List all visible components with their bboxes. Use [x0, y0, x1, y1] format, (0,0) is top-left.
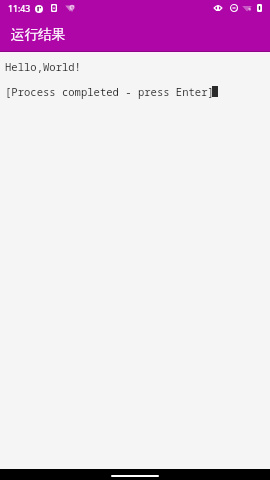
staticText: 运行结果 [11, 26, 66, 43]
button[interactable]: Console output, tap to press Enter [0, 52, 270, 469]
other: Notification [35, 5, 43, 13]
other: Battery [257, 4, 262, 12]
other: Data saver [214, 4, 222, 12]
other: Do not disturb [230, 4, 238, 12]
staticText: 11:43 [8, 3, 31, 15]
staticText: Hello,World! [Process completed - press … [5, 60, 214, 99]
other: Vibrate [51, 4, 57, 12]
other: Home [111, 475, 159, 477]
other: No internet [65, 4, 75, 12]
button[interactable]: 运行结果 [0, 16, 270, 52]
other: Wi-Fi [242, 4, 252, 12]
